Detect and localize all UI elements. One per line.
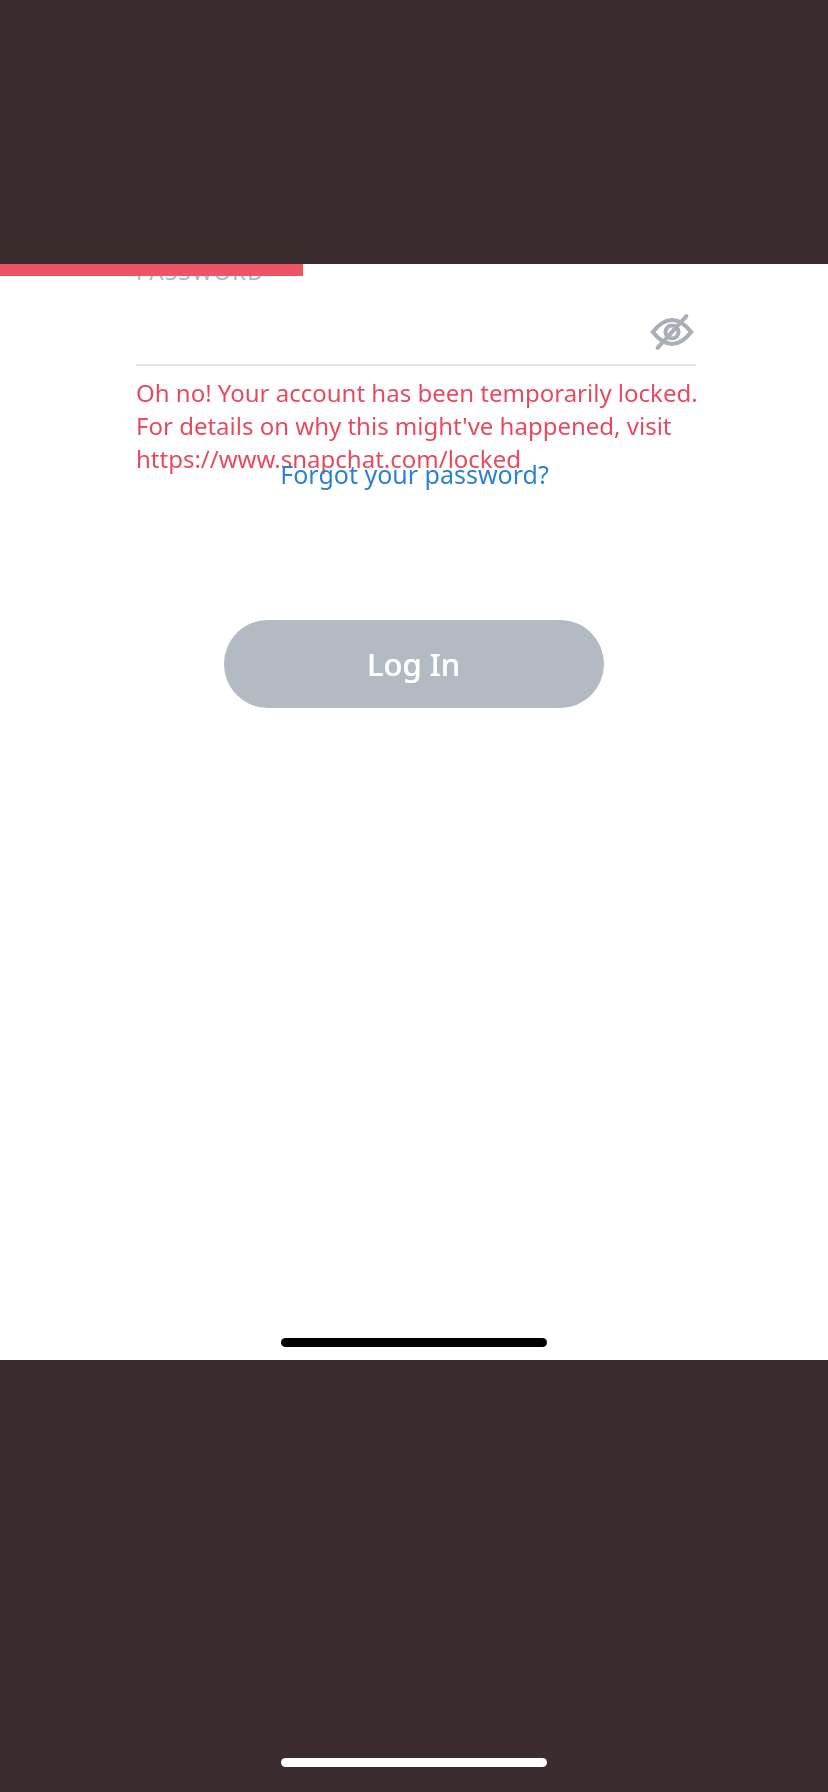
button[interactable]: Show password	[628, 288, 716, 376]
button[interactable]: Log In	[224, 620, 604, 708]
staticText: Forgot your password?	[280, 457, 549, 491]
staticText: PASSWORD	[136, 264, 265, 286]
button[interactable]: Forgot your password?	[266, 447, 563, 501]
staticText: https://www.snapchat.com/locked	[136, 442, 521, 475]
staticText: Oh no! Your account has been temporarily…	[136, 376, 698, 409]
staticText: For details on why this might've happene…	[136, 409, 672, 442]
staticText: Log In	[367, 643, 461, 685]
